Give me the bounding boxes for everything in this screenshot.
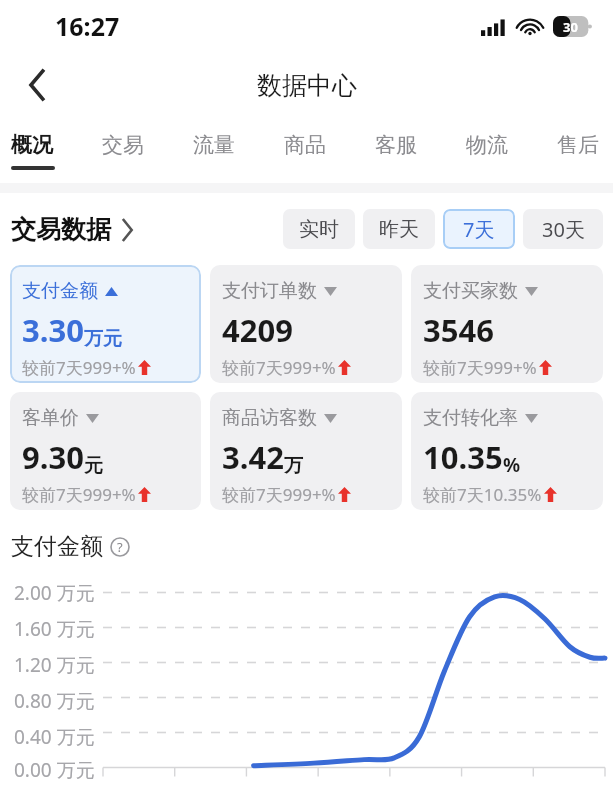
button[interactable]: 概况 (11, 118, 102, 183)
button[interactable]: 物流 (466, 118, 557, 183)
staticText: 2.00 万元 (14, 580, 95, 606)
staticText: 客单价 (22, 406, 79, 430)
staticText: 昨天 (379, 217, 419, 242)
staticText: 支付金额 (11, 532, 103, 561)
button[interactable]: Back (14, 62, 60, 108)
staticText: 0.00 万元 (14, 757, 95, 783)
staticText: 交易 (102, 132, 144, 158)
staticText: 物流 (466, 132, 508, 158)
staticText: 支付订单数 (222, 279, 317, 303)
button[interactable]: 支付金额 (10, 265, 201, 383)
button[interactable]: 售后 (557, 118, 609, 183)
button[interactable]: 商品 (284, 118, 375, 183)
button[interactable]: 交易数据 (11, 214, 133, 245)
staticText: 售后 (557, 132, 599, 158)
staticText: 3.42 (222, 436, 284, 478)
staticText: 万 (284, 454, 303, 478)
staticText: 10.35 (423, 436, 503, 478)
staticText: ? (117, 538, 123, 556)
staticText: 30 (563, 18, 578, 36)
staticText: 数据中心 (257, 70, 357, 101)
staticText: 1.60 万元 (14, 616, 95, 642)
staticText: 较前7天10.35% (423, 483, 542, 506)
staticText: 较前7天999+% (222, 483, 336, 506)
staticText: 较前7天999+% (22, 483, 136, 506)
button[interactable]: 昨天 (363, 209, 435, 249)
button[interactable]: 支付金额 (11, 532, 130, 561)
staticText: 流量 (193, 132, 235, 158)
staticText: 实时 (299, 217, 339, 242)
button[interactable]: 实时 (283, 209, 355, 249)
staticText: 30天 (542, 216, 585, 243)
staticText: 较前7天999+% (22, 356, 136, 379)
staticText: 万元 (84, 327, 122, 351)
button[interactable]: 7天 (443, 209, 515, 249)
button[interactable]: 30天 (523, 209, 603, 249)
staticText: 7天 (463, 216, 495, 243)
staticText: 4209 (222, 309, 293, 351)
button[interactable]: 客单价 (10, 392, 201, 510)
staticText: 3.30 (22, 309, 84, 351)
staticText: 客服 (375, 132, 417, 158)
staticText: 0.40 万元 (14, 724, 95, 750)
staticText: 较前7天999+% (423, 356, 537, 379)
staticText: 概况 (11, 132, 53, 158)
button[interactable]: 支付转化率 (411, 392, 603, 510)
staticText: 支付转化率 (423, 406, 518, 430)
staticText: 支付金额 (22, 279, 98, 303)
button[interactable]: 商品访客数 (210, 392, 402, 510)
staticText: 3546 (423, 309, 494, 351)
button[interactable]: 支付订单数 (210, 265, 402, 383)
staticText: 1.20 万元 (14, 652, 95, 678)
staticText: % (503, 452, 521, 478)
button[interactable]: 流量 (193, 118, 284, 183)
staticText: 商品 (284, 132, 326, 158)
button[interactable]: 支付买家数 (411, 265, 603, 383)
staticText: 商品访客数 (222, 406, 317, 430)
staticText: 0.80 万元 (14, 688, 95, 714)
staticText: 较前7天999+% (222, 356, 336, 379)
staticText: 9.30 (22, 436, 84, 478)
button[interactable]: 交易 (102, 118, 193, 183)
staticText: 元 (84, 454, 103, 478)
other: Help (110, 537, 130, 557)
staticText: 交易数据 (11, 214, 111, 245)
staticText: 支付买家数 (423, 279, 518, 303)
button[interactable]: 客服 (375, 118, 466, 183)
staticText: 16:27 (55, 9, 120, 43)
